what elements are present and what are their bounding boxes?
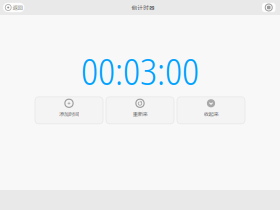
staticText: 收起来 xyxy=(203,110,218,118)
button[interactable]: 重新来 xyxy=(106,97,174,124)
staticText: 返回 xyxy=(12,4,22,11)
button[interactable]: 收起来 xyxy=(177,97,245,124)
staticText: 重新来 xyxy=(132,110,147,118)
staticText: 倒计时器 xyxy=(131,3,155,11)
button[interactable]: 返回 Back to app xyxy=(3,3,24,12)
button[interactable]: 添加时间 xyxy=(35,97,103,124)
staticText: 添加时间 xyxy=(59,110,79,118)
staticText: 00:03:00 xyxy=(81,45,199,96)
button[interactable]: Stop recording xyxy=(262,3,275,12)
